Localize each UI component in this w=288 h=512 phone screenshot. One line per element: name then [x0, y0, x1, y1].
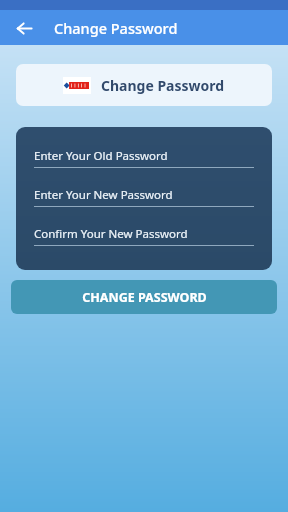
button[interactable]: Confirm Your New Password [34, 226, 254, 246]
staticText: CHANGE PASSWORD [82, 289, 207, 306]
button[interactable]: Change Password [16, 64, 272, 106]
button[interactable]: Back [10, 14, 38, 42]
button[interactable]: Enter Your New Password [34, 187, 254, 207]
button[interactable]: CHANGE PASSWORD [11, 280, 277, 314]
button[interactable]: Enter Your Old Password [34, 148, 254, 168]
staticText: Enter Your New Password [34, 187, 173, 203]
staticText: Change Password [101, 76, 225, 95]
staticText: Change Password [54, 18, 178, 38]
staticText: Confirm Your New Password [34, 226, 188, 242]
staticText: Enter Your Old Password [34, 148, 168, 164]
